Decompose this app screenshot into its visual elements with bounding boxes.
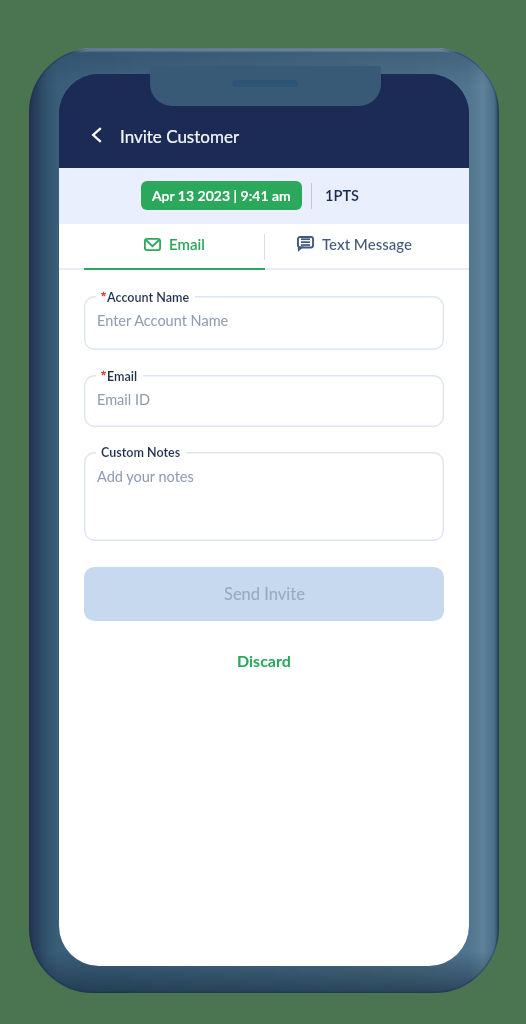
button[interactable]: Email (84, 223, 264, 270)
staticText: Send Invite (224, 584, 305, 604)
staticText: Email (107, 369, 138, 384)
button[interactable]: Text Message (264, 223, 444, 270)
staticText: Email ID (97, 391, 151, 408)
staticText: Add your notes (97, 468, 194, 485)
staticText: Discard (237, 651, 291, 670)
button[interactable]: Back (79, 117, 115, 153)
staticText: Account Name (107, 290, 190, 305)
staticText: Text Message (322, 235, 412, 253)
staticText: 1PTS (325, 187, 360, 204)
staticText: Invite Customer (120, 126, 240, 146)
staticText: Enter Account Name (97, 312, 229, 329)
staticText: Email (169, 235, 205, 253)
staticText: Apr 13 2023 | 9:41 am (152, 187, 291, 204)
button[interactable]: Apr 13 2023 | 9:41 am (141, 181, 302, 210)
staticText: Custom Notes (101, 445, 181, 460)
button[interactable]: Send Invite (84, 567, 444, 621)
button[interactable]: Discard (84, 642, 444, 678)
